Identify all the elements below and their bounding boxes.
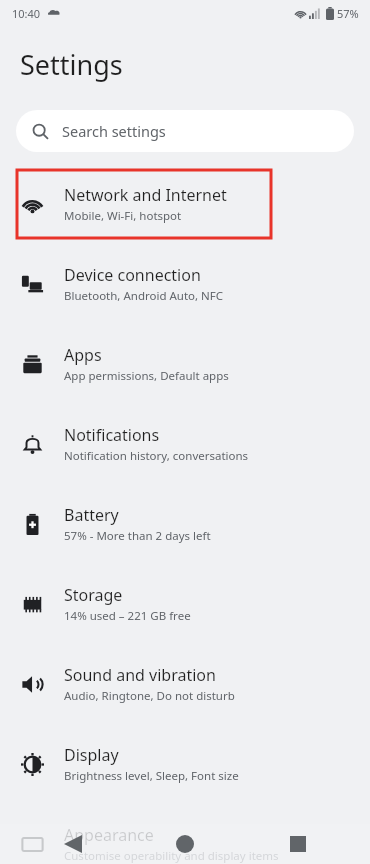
staticText: Device connection [64, 264, 201, 286]
staticText: Brightness level, Sleep, Font size [64, 768, 239, 784]
button[interactable]: Home [176, 835, 194, 853]
staticText: Bluetooth, Android Auto, NFC [64, 288, 224, 304]
button[interactable]: Network and Internet [0, 170, 370, 238]
staticText: Battery [64, 504, 119, 526]
staticText: Settings [20, 46, 123, 83]
staticText: Notifications [64, 424, 160, 446]
staticText: App permissions, Default apps [64, 368, 229, 384]
button[interactable]: Sound and vibration [0, 650, 370, 718]
button[interactable]: Battery [0, 490, 370, 558]
button[interactable]: Appearance [0, 810, 370, 864]
staticText: Apps [64, 344, 102, 366]
button[interactable]: Apps [0, 330, 370, 398]
staticText: Notification history, conversations [64, 448, 249, 464]
button[interactable]: Storage [0, 570, 370, 638]
button[interactable]: Back [64, 835, 82, 853]
staticText: 14% used – 221 GB free [64, 608, 191, 624]
button[interactable]: Display [0, 730, 370, 798]
staticText: Storage [64, 584, 123, 606]
staticText: Display [64, 744, 119, 766]
staticText: Mobile, Wi-Fi, hotspot [64, 208, 182, 224]
staticText: Customise operability and display items [64, 848, 279, 864]
staticText: 57% - More than 2 days left [64, 528, 211, 544]
button[interactable]: Device connection [0, 250, 370, 318]
staticText: 57% [337, 6, 359, 21]
button[interactable]: Notifications [0, 410, 370, 478]
button[interactable]: Search settings [16, 110, 354, 152]
staticText: Appearance [64, 824, 154, 846]
staticText: Sound and vibration [64, 664, 216, 686]
staticText: 10:40 [12, 6, 41, 21]
staticText: Audio, Ringtone, Do not disturb [64, 688, 235, 704]
staticText: Search settings [62, 121, 166, 141]
staticText: Network and Internet [64, 184, 227, 206]
